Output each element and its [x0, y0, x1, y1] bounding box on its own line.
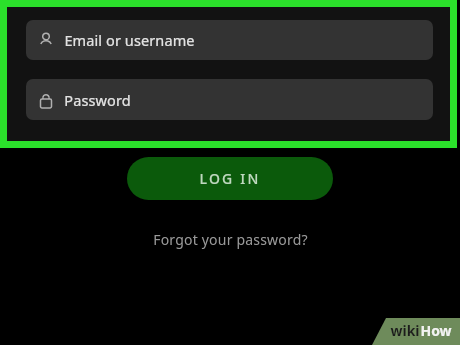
staticText: Email or username	[64, 30, 195, 50]
staticText: LOG IN	[199, 169, 261, 188]
button[interactable]: Password	[26, 79, 433, 120]
staticText: Forgot your password?	[153, 230, 308, 249]
staticText: How	[420, 321, 452, 340]
button[interactable]: Forgot your password?	[0, 230, 460, 345]
staticText: wiki	[390, 321, 420, 340]
staticText: Password	[64, 90, 131, 110]
button[interactable]: Email or username	[26, 20, 433, 60]
button[interactable]: LOG IN	[127, 157, 333, 200]
